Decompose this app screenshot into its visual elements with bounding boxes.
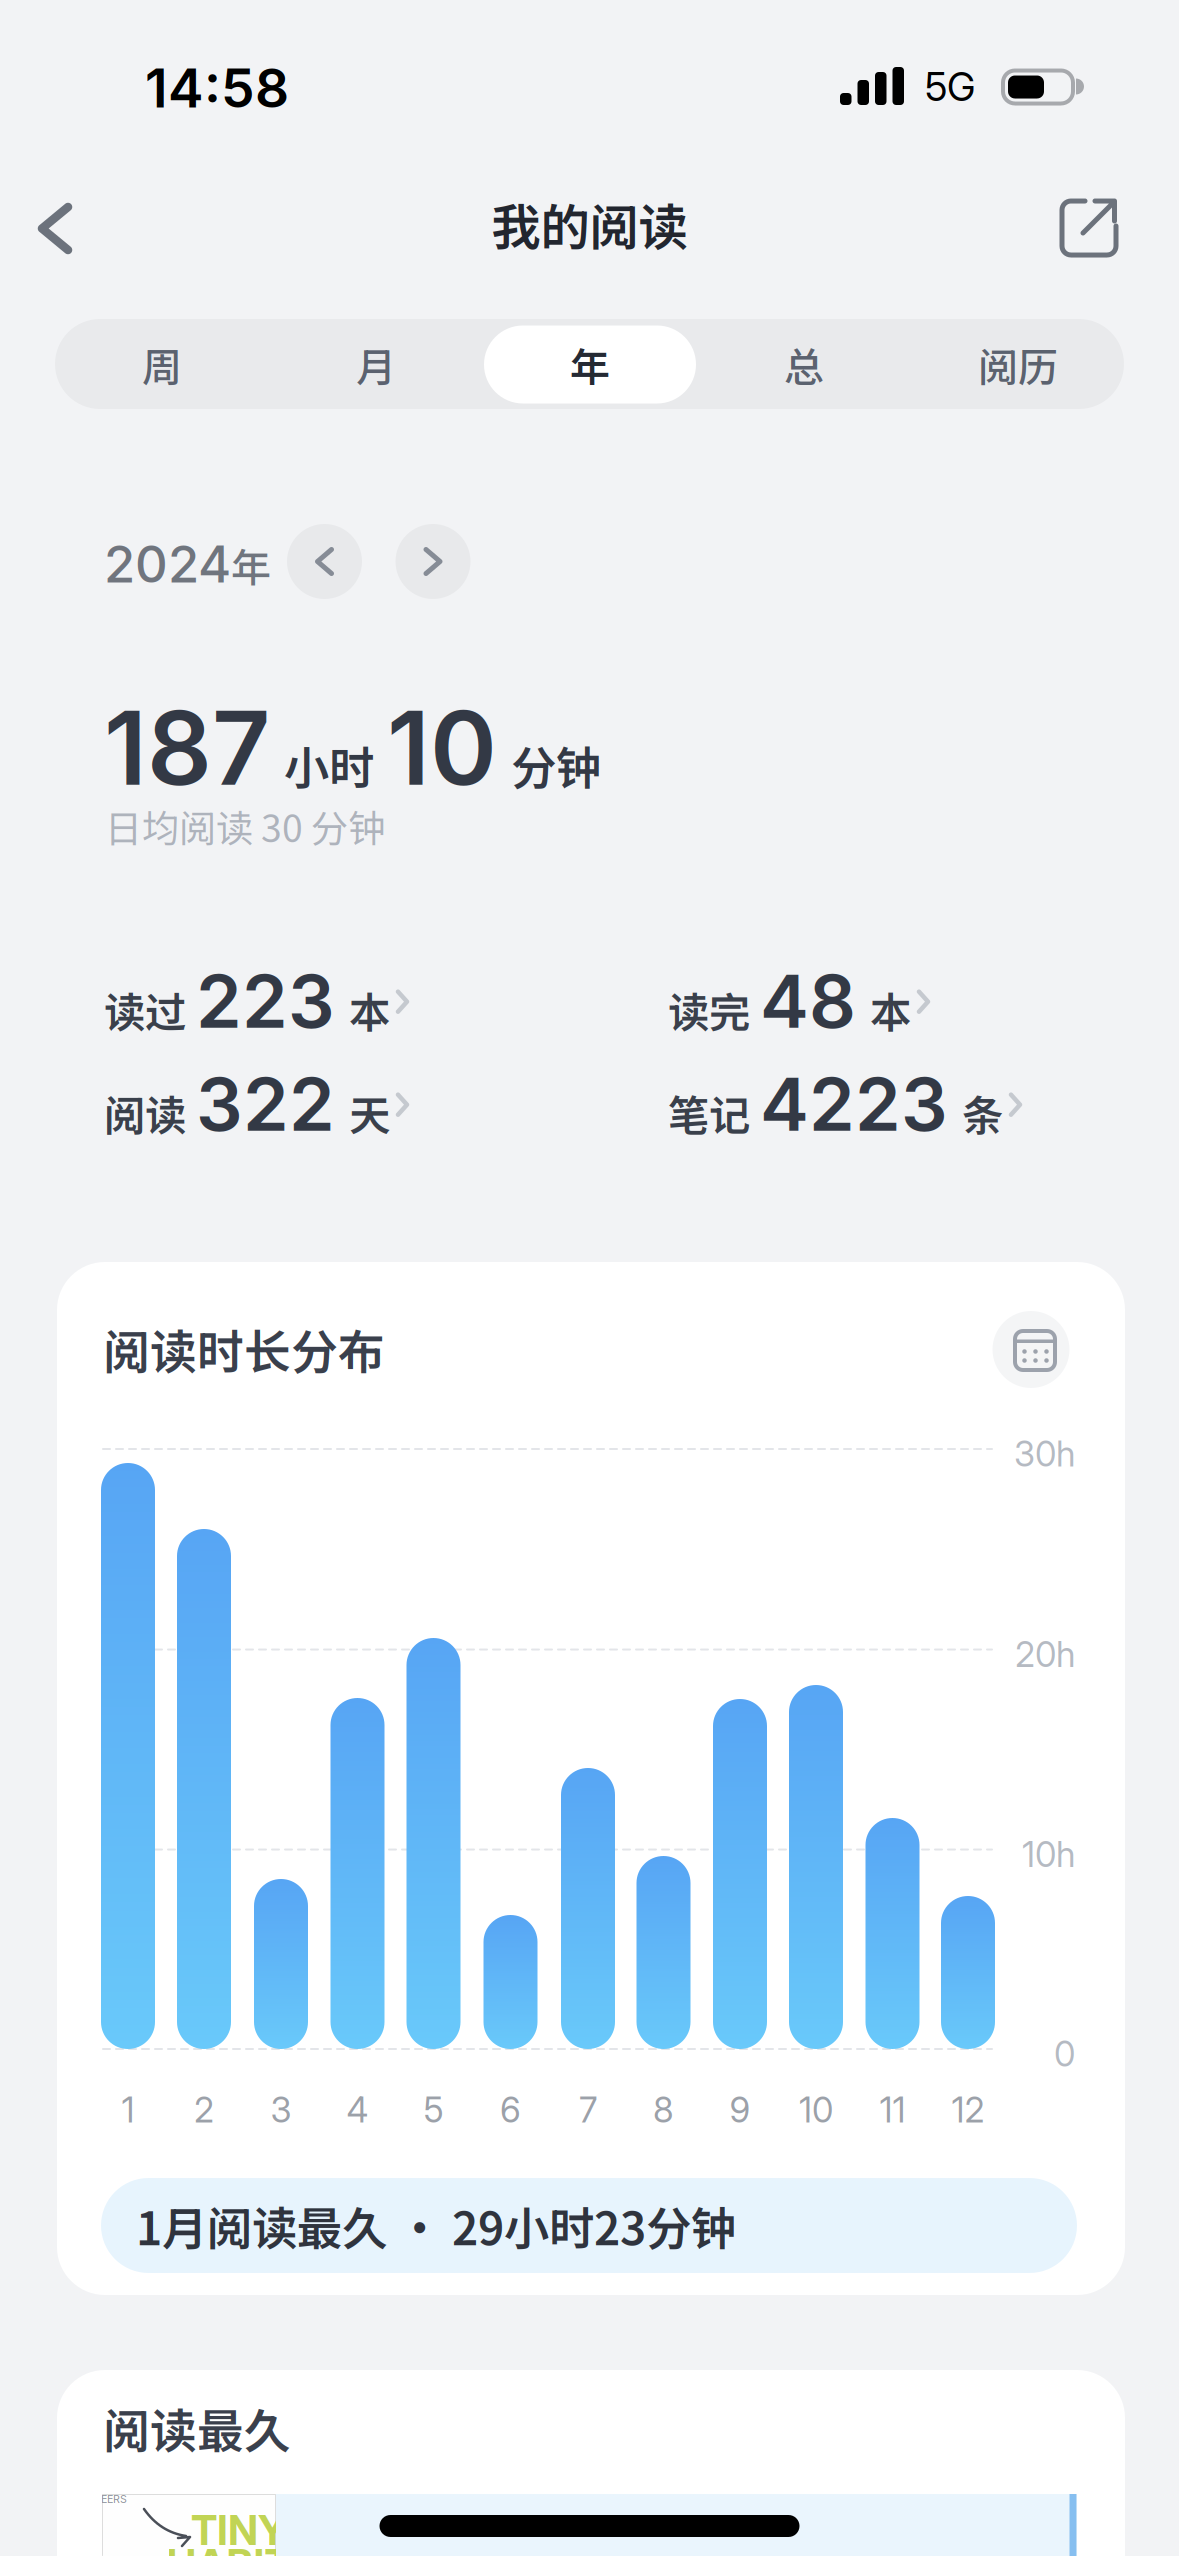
staticText: 阅读时长分布 bbox=[103, 1315, 385, 1383]
staticText: 187 bbox=[104, 687, 270, 809]
staticText: 4 bbox=[346, 2089, 368, 2131]
staticText: 322 bbox=[196, 1060, 335, 1148]
staticText: 月 bbox=[356, 335, 396, 393]
staticText: 0 bbox=[1054, 2033, 1075, 2075]
staticText: 读过 bbox=[104, 980, 186, 1040]
staticText: 日均阅读 30 分钟 bbox=[105, 799, 385, 853]
staticText: 14:58 bbox=[145, 56, 289, 120]
staticText: 10 bbox=[387, 687, 497, 809]
staticText: 条 bbox=[962, 1083, 1003, 1143]
staticText: EERS bbox=[101, 2492, 127, 2505]
staticText: 1 bbox=[121, 2089, 134, 2131]
button[interactable]: Share bbox=[1054, 193, 1124, 263]
staticText: 笔记 bbox=[668, 1083, 750, 1143]
staticText: 本 bbox=[349, 980, 390, 1040]
staticText: 10 bbox=[799, 2089, 833, 2131]
button[interactable]: Next year bbox=[395, 524, 470, 599]
button[interactable]: 笔记 bbox=[668, 1059, 1128, 1149]
staticText: 9 bbox=[729, 2089, 750, 2131]
staticText: 5 bbox=[423, 2089, 443, 2131]
staticText: 7 bbox=[579, 2089, 597, 2131]
button[interactable]: 总 bbox=[698, 324, 910, 404]
staticText: 阅历 bbox=[978, 335, 1058, 393]
button[interactable]: Back bbox=[26, 198, 86, 258]
button[interactable]: 读完 bbox=[668, 956, 1128, 1046]
staticText: 1月阅读最久 · 29小时23分钟 bbox=[136, 2193, 736, 2258]
staticText: 总 bbox=[784, 335, 824, 393]
staticText: 我的阅读 bbox=[491, 188, 687, 260]
staticText: 小时 bbox=[284, 732, 374, 798]
staticText: 3 bbox=[270, 2089, 291, 2131]
staticText: 30h bbox=[1014, 1433, 1075, 1475]
staticText: 周 bbox=[142, 335, 182, 393]
staticText: 读完 bbox=[668, 980, 750, 1040]
staticText: 11 bbox=[879, 2089, 905, 2131]
staticText: HABITS bbox=[166, 2539, 317, 2556]
staticText: TINY bbox=[191, 2505, 287, 2555]
staticText: 48 bbox=[760, 957, 856, 1045]
staticText: 223 bbox=[196, 957, 335, 1045]
staticText: 4223 bbox=[760, 1060, 948, 1148]
staticText: 6 bbox=[500, 2089, 521, 2131]
staticText: 8 bbox=[653, 2089, 674, 2131]
button[interactable]: Previous year bbox=[287, 524, 362, 599]
button[interactable]: 月 bbox=[270, 324, 482, 404]
button[interactable]: 阅读 bbox=[104, 1059, 564, 1149]
staticText: 分钟 bbox=[511, 732, 601, 798]
staticText: 阅读 bbox=[104, 1083, 186, 1143]
staticText: 2024 bbox=[104, 533, 231, 595]
button[interactable]: Tiny Habits bbox=[102, 2494, 1077, 2556]
button[interactable]: 年 bbox=[484, 324, 696, 404]
staticText: 2 bbox=[194, 2089, 214, 2131]
staticText: 10h bbox=[1022, 1833, 1075, 1875]
button[interactable]: 阅历 bbox=[912, 324, 1124, 404]
staticText: 12 bbox=[951, 2089, 984, 2131]
button[interactable]: 周 bbox=[56, 324, 268, 404]
staticText: 年 bbox=[231, 536, 271, 594]
button[interactable]: Calendar view bbox=[992, 1311, 1069, 1388]
staticText: 年 bbox=[570, 335, 610, 393]
staticText: 本 bbox=[870, 980, 911, 1040]
staticText: 20h bbox=[1015, 1633, 1075, 1675]
button[interactable]: 读过 bbox=[104, 956, 564, 1046]
staticText: 阅读最久 bbox=[103, 2394, 291, 2462]
staticText: 天 bbox=[349, 1083, 390, 1143]
staticText: 5G bbox=[925, 64, 975, 110]
